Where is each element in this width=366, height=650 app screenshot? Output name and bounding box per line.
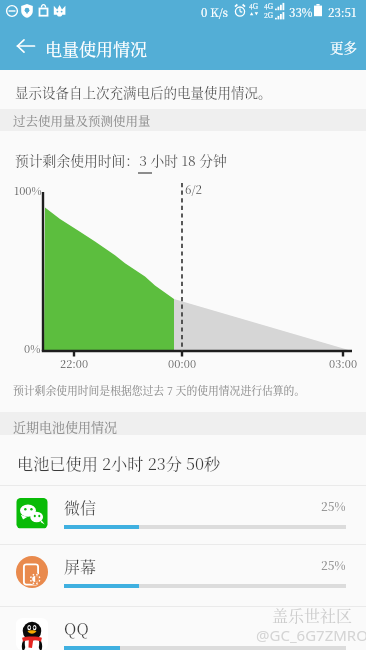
staticText: 更多 (330, 37, 357, 56)
staticText: 过去使用量及预测使用量 (13, 112, 151, 130)
staticText: 屏幕 (64, 555, 97, 578)
staticText: 2G (264, 10, 274, 20)
staticText: 预计剩余使用时间：3 小时 18 分钟 (15, 150, 227, 170)
staticText: 03:00 (329, 355, 358, 371)
button[interactable]: 屏幕 (0, 545, 366, 603)
staticText: 33% (289, 4, 313, 21)
button[interactable]: 微信 (0, 486, 366, 544)
staticText: 近期电池使用情况 (13, 417, 118, 436)
staticText: 25% (321, 497, 346, 514)
button[interactable]: Back (6, 22, 46, 70)
staticText: 00:00 (168, 355, 197, 371)
staticText: 微信 (64, 496, 97, 519)
button[interactable]: 更多 (320, 22, 366, 70)
button[interactable]: QQ (0, 607, 366, 650)
staticText: 100% (14, 182, 42, 198)
staticText: 电池已使用 2小时 23分 50秒 (17, 451, 221, 474)
staticText: 4G (249, 1, 259, 11)
staticText: 显示设备自上次充满电后的电量使用情况。 (15, 82, 272, 101)
staticText: 0 K/s (201, 4, 228, 21)
staticText: 25% (321, 556, 346, 573)
staticText: 盖乐世社区 (272, 604, 353, 627)
staticText: 23:51 (328, 4, 357, 21)
staticText: 4G (264, 1, 274, 11)
staticText: 22:00 (60, 355, 89, 371)
staticText: 预计剩余使用时间是根据您过去 7 天的使用情况进行估算的。 (13, 383, 306, 399)
staticText: 6/2 (185, 181, 202, 198)
staticText: 0% (24, 340, 41, 356)
staticText: @GC_6G7ZMROT (256, 625, 366, 645)
staticText: QQ (64, 617, 89, 640)
staticText: 电量使用情况 (45, 36, 147, 60)
